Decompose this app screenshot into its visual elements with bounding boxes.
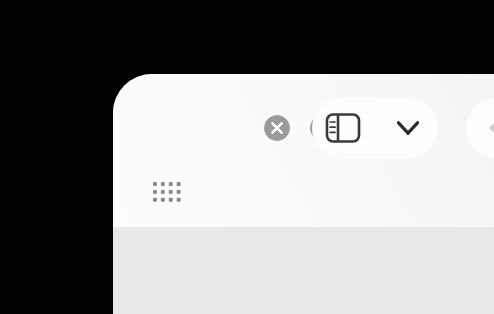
button[interactable]: Back xyxy=(466,98,494,158)
button[interactable]: Minimize xyxy=(310,115,336,141)
button[interactable]: All apps xyxy=(146,174,184,208)
button[interactable]: Toggle sidebar xyxy=(325,111,361,145)
button[interactable]: Full screen xyxy=(357,115,383,141)
button[interactable]: Close xyxy=(264,115,290,141)
button[interactable]: Show options xyxy=(394,114,422,142)
